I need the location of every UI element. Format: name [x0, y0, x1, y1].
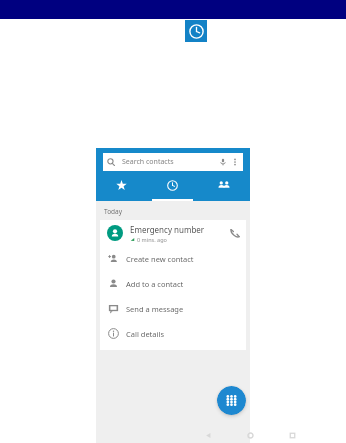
staticText: Send a message	[126, 304, 184, 314]
button[interactable]: Send a message	[100, 296, 246, 321]
button[interactable]: Emergency number	[100, 220, 246, 246]
button[interactable]: Tab	[96, 171, 147, 201]
button[interactable]: Search contacts	[103, 153, 243, 171]
button[interactable]: Voice search	[217, 156, 229, 168]
staticText: Emergency number	[130, 224, 205, 235]
button[interactable]: Call	[224, 222, 246, 244]
button[interactable]: Home	[243, 428, 257, 442]
button[interactable]: Recents	[285, 428, 299, 442]
staticText: Call details	[126, 329, 164, 339]
staticText: Search contacts	[122, 157, 174, 167]
button[interactable]: Back	[201, 428, 215, 442]
button[interactable]: Clock app	[185, 20, 207, 42]
button[interactable]: More options	[229, 156, 241, 168]
button[interactable]: Create new contact	[100, 246, 246, 271]
staticText: Create new contact	[126, 254, 194, 264]
button[interactable]: Recents tab	[147, 171, 198, 201]
button[interactable]: Tab	[198, 171, 249, 201]
button[interactable]: Call details	[100, 321, 246, 346]
staticText: Add to a contact	[126, 279, 184, 289]
button[interactable]: Open dialpad	[217, 386, 246, 415]
staticText: Today	[104, 207, 123, 216]
button[interactable]: Add to a contact	[100, 271, 246, 296]
staticText: 0 mins. ago	[137, 236, 167, 243]
